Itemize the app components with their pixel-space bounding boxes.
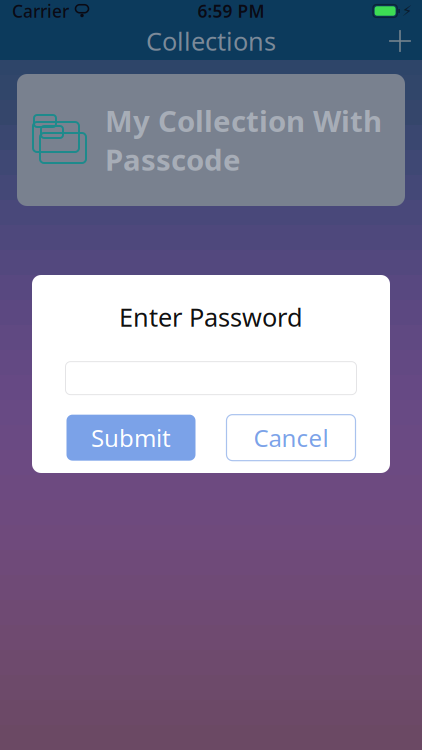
staticText: Collections: [146, 24, 276, 58]
button[interactable]: Add Collection: [378, 22, 422, 60]
staticText: ⚡︎: [402, 3, 412, 19]
staticText: Carrier: [12, 0, 69, 22]
staticText: 6:59 PM: [197, 0, 264, 22]
staticText: Enter Password: [119, 300, 303, 334]
staticText: My Collection With Passcode: [105, 101, 382, 179]
button[interactable]: Submit: [66, 415, 195, 461]
staticText: Cancel: [253, 422, 328, 454]
staticText: Submit: [91, 422, 171, 454]
button[interactable]: My Collection With Passcode: [17, 74, 405, 206]
button[interactable]: Cancel: [226, 415, 355, 461]
